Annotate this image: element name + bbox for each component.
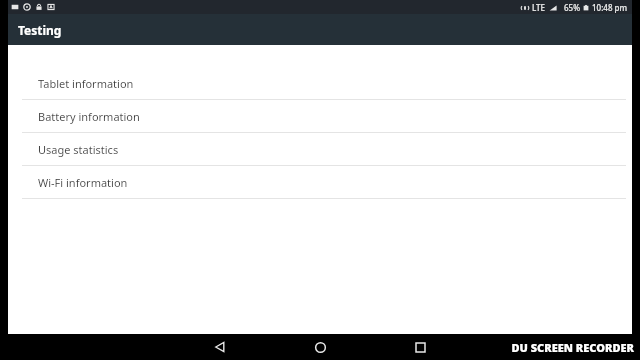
staticText: DU SCREEN RECORDER [511,340,634,355]
button[interactable]: Wi-Fi information [8,166,632,198]
staticText: 65% [564,2,580,13]
button[interactable]: Home [308,335,332,359]
staticText: Usage statistics [38,142,119,157]
staticText: 10:48 pm [592,2,628,13]
staticText: Battery information [38,109,140,124]
staticText: LTE [532,2,546,13]
staticText: Wi-Fi information [38,175,128,190]
staticText: Testing [18,22,62,38]
staticText: Tablet information [38,76,134,91]
button[interactable]: Tablet information [8,67,632,99]
button[interactable]: Usage statistics [8,133,632,165]
button[interactable]: Battery information [8,100,632,132]
button[interactable]: Recent apps [408,335,432,359]
button[interactable]: Back [208,335,232,359]
